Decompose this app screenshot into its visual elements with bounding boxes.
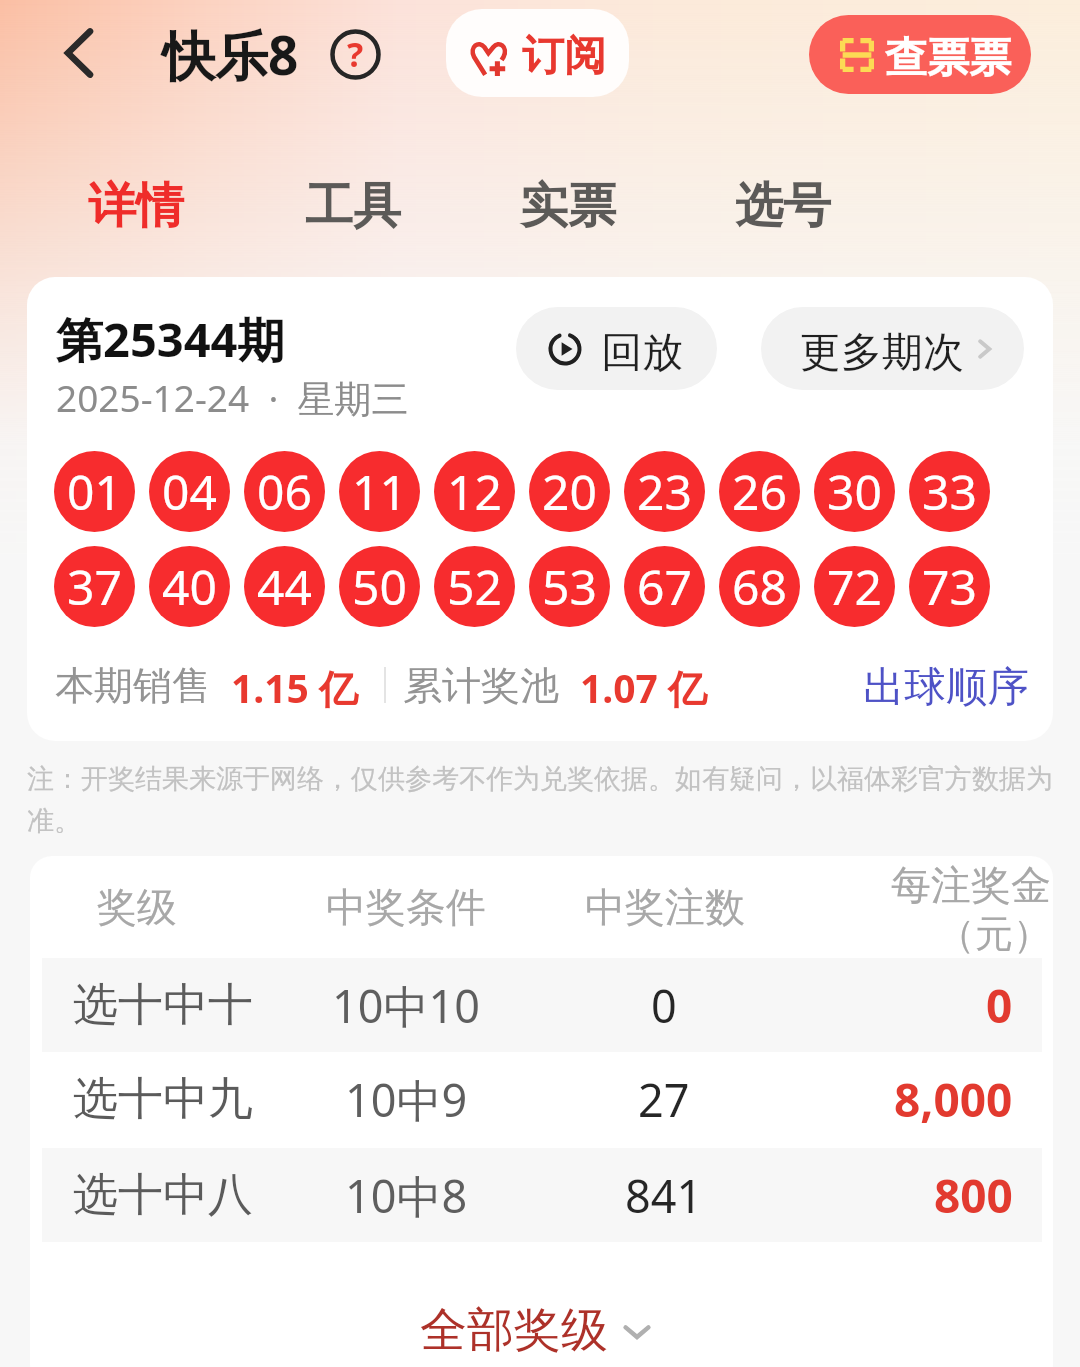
staticText: 订阅: [522, 30, 606, 83]
staticText: 68: [732, 554, 787, 619]
staticText: 查票票: [885, 32, 1011, 85]
staticText: （元）: [937, 910, 1051, 958]
button[interactable]: 全部奖级: [420, 1301, 652, 1360]
staticText: 8,000: [894, 1068, 1013, 1131]
staticText: 10中10: [332, 975, 480, 1036]
staticText: 累计奖池: [403, 661, 559, 710]
staticText: 选号: [735, 176, 831, 236]
button[interactable]: 回放: [516, 307, 717, 390]
staticText: 26: [732, 459, 787, 524]
staticText: 出球顺序: [863, 661, 1029, 713]
staticText: 30: [827, 459, 882, 524]
staticText: 1.07 亿: [580, 661, 708, 714]
staticText: 33: [922, 459, 977, 524]
button[interactable]: Help: [330, 29, 381, 80]
staticText: 1.15 亿: [231, 661, 359, 714]
staticText: 37: [67, 554, 122, 619]
staticText: 第25344期: [56, 307, 285, 371]
button[interactable]: 更多期次: [761, 307, 1024, 390]
staticText: ?: [347, 31, 364, 77]
staticText: 详情: [88, 176, 184, 236]
staticText: 更多期次: [800, 327, 964, 379]
staticText: 23: [637, 459, 692, 524]
staticText: 奖级: [97, 882, 177, 932]
staticText: 工具: [305, 176, 401, 236]
button[interactable]: 详情: [88, 176, 184, 236]
staticText: 中奖条件: [326, 882, 486, 932]
staticText: 10中9: [345, 1069, 468, 1130]
button[interactable]: 选十中八: [42, 1148, 1042, 1242]
button[interactable]: 工具: [305, 176, 401, 236]
button[interactable]: 出球顺序: [863, 661, 1029, 713]
staticText: 11: [352, 459, 407, 524]
staticText: 0: [651, 975, 677, 1036]
staticText: 67: [637, 554, 692, 619]
staticText: 06: [257, 459, 312, 524]
staticText: 12: [447, 459, 502, 524]
staticText: 每注奖金: [891, 860, 1051, 910]
staticText: 44: [257, 554, 312, 619]
staticText: 800: [934, 1164, 1013, 1227]
staticText: 01: [67, 459, 122, 524]
staticText: 选十中十: [73, 977, 253, 1034]
staticText: 回放: [601, 327, 683, 379]
button[interactable]: 查票票: [809, 15, 1031, 94]
staticText: 73: [922, 554, 977, 619]
button[interactable]: Back: [45, 19, 113, 87]
staticText: 选十中九: [73, 1071, 253, 1128]
staticText: 841: [625, 1165, 703, 1226]
staticText: 选十中八: [73, 1167, 253, 1224]
staticText: 04: [162, 459, 217, 524]
staticText: 40: [162, 554, 217, 619]
staticText: 53: [542, 554, 597, 619]
staticText: 全部奖级: [420, 1301, 608, 1360]
staticText: 2025-12-24 · 星期三: [56, 372, 409, 423]
button[interactable]: 选号: [735, 176, 831, 236]
staticText: 快乐8: [162, 18, 299, 90]
staticText: 实票: [520, 176, 616, 236]
button[interactable]: 订阅: [446, 9, 629, 97]
staticText: 27: [638, 1069, 690, 1130]
button[interactable]: 选十中十: [42, 958, 1042, 1052]
staticText: 0: [986, 974, 1013, 1037]
button[interactable]: 实票: [520, 176, 616, 236]
staticText: 52: [447, 554, 502, 619]
button[interactable]: 选十中九: [42, 1052, 1042, 1146]
staticText: 72: [827, 554, 882, 619]
staticText: 注：开奖结果来源于网络，仅供参考不作为兑奖依据。如有疑问，以福体彩官方数据为准。: [27, 762, 1057, 838]
staticText: 50: [352, 554, 407, 619]
staticText: 中奖注数: [585, 882, 745, 932]
staticText: 20: [542, 459, 597, 524]
staticText: 10中8: [345, 1165, 468, 1226]
staticText: 本期销售: [55, 661, 211, 710]
